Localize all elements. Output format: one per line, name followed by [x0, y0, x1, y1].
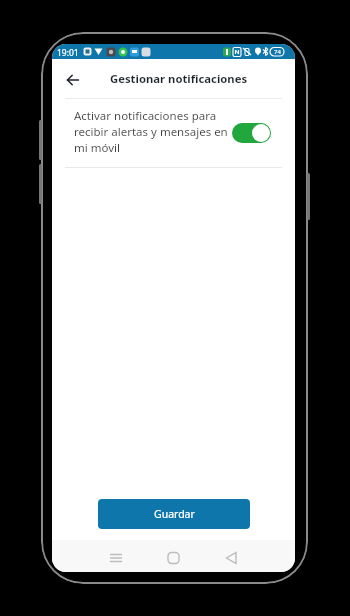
staticText: Activar notificaciones para: [74, 108, 217, 124]
staticText: 74: [274, 48, 281, 56]
staticText: recibir alertas y mensajes en: [74, 124, 228, 140]
staticText: mi móvil: [74, 140, 120, 156]
staticText: Guardar: [154, 507, 195, 521]
staticText: 19:01: [57, 47, 79, 59]
staticText: Gestionar notificaciones: [110, 71, 248, 86]
